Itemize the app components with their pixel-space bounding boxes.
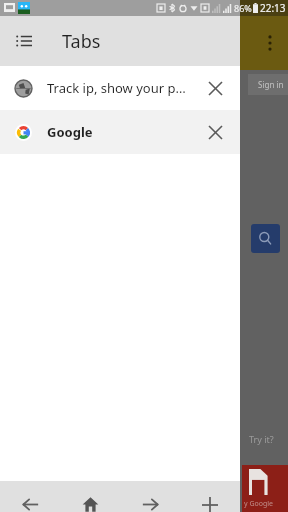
button[interactable]: Sign in <box>248 74 288 95</box>
button[interactable]: Tab list <box>0 17 48 65</box>
staticText: 86% <box>234 2 252 14</box>
button[interactable]: More options <box>258 28 282 58</box>
button[interactable]: Close tab <box>193 66 237 110</box>
button[interactable]: Home <box>60 481 120 512</box>
button[interactable]: Back <box>0 481 60 512</box>
staticText: Try it? <box>249 433 274 445</box>
staticText: Google <box>47 123 193 141</box>
button[interactable]: Forward <box>120 481 180 512</box>
staticText: 22:13 <box>260 1 286 15</box>
button[interactable]: New tab <box>180 481 240 512</box>
button[interactable]: Track ip, show your p… <box>0 66 240 110</box>
button[interactable]: y Google <box>242 465 288 512</box>
staticText: Track ip, show your p… <box>47 79 193 97</box>
staticText: Tabs <box>62 29 101 54</box>
staticText: y Google <box>244 499 274 509</box>
button[interactable]: Search <box>251 224 280 253</box>
button[interactable]: Google <box>0 110 240 154</box>
button[interactable]: Close tab <box>193 110 237 154</box>
staticText: Sign in <box>258 79 284 90</box>
